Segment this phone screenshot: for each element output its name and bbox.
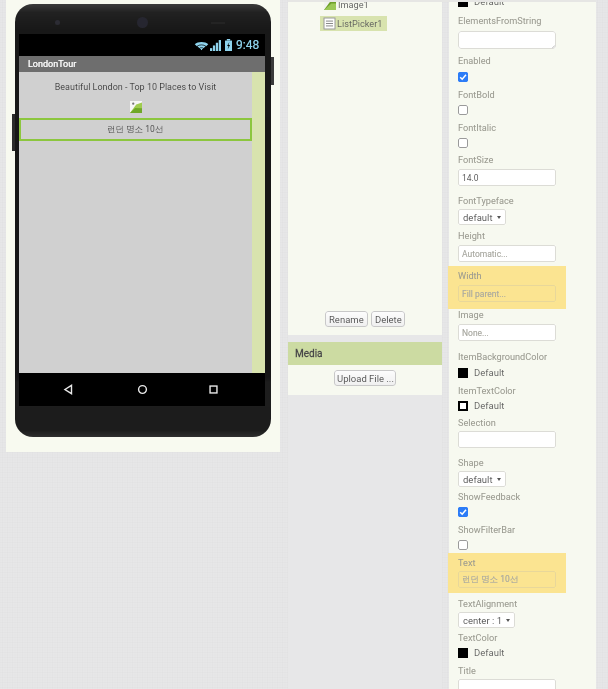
button[interactable]: Upload File ... (334, 370, 396, 386)
button[interactable]: Colour swatch Default (458, 647, 505, 658)
button[interactable] (458, 679, 556, 689)
button[interactable]: default (458, 209, 506, 225)
staticText: ItemBackgroundColor (458, 351, 548, 362)
staticText: Image (458, 309, 484, 320)
staticText: Automatic... (462, 249, 508, 259)
staticText: 9:48 (236, 38, 260, 52)
button[interactable]: default (458, 471, 506, 487)
staticText: FontBold (458, 89, 495, 100)
button[interactable]: center : 1 (458, 612, 515, 628)
button[interactable]: Checked (458, 507, 468, 517)
staticText: Default (474, 0, 505, 7)
staticText: FontSize (458, 154, 494, 165)
button[interactable] (458, 31, 556, 49)
button[interactable]: Unchecked (458, 105, 468, 115)
staticText: FontItalic (458, 122, 497, 133)
button[interactable]: Colour swatch Default (458, 367, 505, 378)
button[interactable] (458, 431, 556, 448)
button[interactable]: Delete (371, 311, 405, 327)
button[interactable]: Image1 (324, 0, 369, 10)
staticText: 14.0 (462, 173, 479, 183)
staticText: Enabled (458, 55, 491, 66)
staticText: Upload File ... (337, 373, 394, 384)
button[interactable]: Colour swatch Default (458, 400, 505, 411)
staticText: TextAlignment (458, 598, 518, 609)
button[interactable]: 런던 명소 10선 (19, 118, 252, 141)
button[interactable]: None... (458, 324, 556, 341)
staticText: ElementsFromString (458, 15, 542, 26)
staticText: Beautiful London - Top 10 Places to Visi… (19, 82, 252, 93)
button[interactable]: Home (135, 382, 150, 397)
staticText: FontTypeface (458, 195, 514, 206)
staticText: Width (458, 270, 482, 281)
button[interactable]: Rename (325, 311, 368, 327)
staticText: None... (462, 328, 489, 338)
staticText: ShowFilterBar (458, 524, 516, 535)
button[interactable]: Back (61, 382, 76, 397)
button[interactable]: Recents (206, 382, 221, 397)
staticText: Default (474, 647, 505, 658)
button[interactable]: Automatic... (458, 245, 556, 262)
button[interactable]: Unchecked (458, 540, 468, 550)
staticText: Media (295, 348, 323, 360)
staticText: Text (458, 557, 476, 568)
staticText: 런던 명소 10선 (462, 574, 519, 585)
staticText: default (463, 474, 493, 485)
staticText: ListPicker1 (337, 18, 383, 29)
staticText: Selection (458, 417, 496, 428)
staticText: Default (474, 367, 505, 378)
staticText: TextColor (458, 632, 498, 643)
button[interactable]: Unchecked (458, 138, 468, 148)
button[interactable]: Checked (458, 72, 468, 82)
staticText: ShowFeedback (458, 491, 521, 502)
staticText: LondonTour (28, 59, 77, 70)
staticText: Image1 (338, 0, 369, 10)
staticText: 런던 명소 10선 (107, 124, 164, 135)
staticText: center : 1 (463, 615, 502, 626)
staticText: default (463, 212, 493, 223)
staticText: Height (458, 230, 485, 241)
staticText: ItemTextColor (458, 385, 516, 396)
staticText: Fill parent... (462, 289, 506, 299)
button[interactable]: Fill parent... (458, 285, 556, 302)
staticText: Shape (458, 457, 484, 468)
button[interactable]: Media (288, 342, 442, 365)
button[interactable]: 14.0 (458, 169, 556, 186)
staticText: Delete (375, 314, 402, 325)
button[interactable]: 런던 명소 10선 (458, 571, 556, 588)
button[interactable]: ListPicker1 (320, 16, 387, 31)
staticText: Default (474, 400, 505, 411)
staticText: Rename (329, 314, 364, 325)
staticText: Title (458, 665, 476, 676)
